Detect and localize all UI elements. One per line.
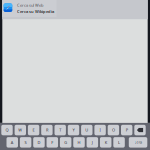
button[interactable]: L [113,137,125,148]
button[interactable]: W [15,125,26,135]
button[interactable]: Delete [134,125,146,135]
button[interactable]: O [108,125,119,135]
button[interactable]: Y [68,125,79,135]
button[interactable]: H [73,137,85,148]
staticText: D [37,140,40,145]
staticText: H [77,140,80,145]
staticText: E [33,127,35,133]
button[interactable]: E [28,125,39,135]
staticText: F [51,140,53,145]
staticText: U [85,127,88,133]
staticText: P [126,127,128,133]
button[interactable]: R [41,125,53,135]
staticText: T [59,127,61,133]
staticText: Q [5,127,8,133]
staticText: Cerca sul Web [17,2,43,8]
staticText: R [46,127,48,133]
staticText: S [25,140,27,145]
button[interactable]: D [33,137,45,148]
staticText: I [100,127,101,133]
staticText: Y [72,127,74,133]
button[interactable]: I [94,125,106,135]
button[interactable]: S [20,137,31,148]
button[interactable]: F [46,137,58,148]
button[interactable]: U [81,125,92,135]
button[interactable]: K [100,137,111,148]
button[interactable]: J [87,137,98,148]
staticText: J [92,140,93,145]
button[interactable]: G [60,137,71,148]
button[interactable]: A [6,137,18,148]
staticText: L [118,140,120,145]
staticText: Cerca [135,141,142,144]
staticText: O [112,127,115,133]
staticText: Cerca su Wikipedia [17,9,54,14]
staticText: G [64,140,67,145]
button[interactable]: Cerca su Wikipedia [2,7,56,16]
button[interactable]: Cerca sul Web [2,1,56,9]
staticText: K [105,140,107,145]
button[interactable]: Cerca [129,137,147,148]
staticText: A [11,140,14,145]
staticText: W [18,127,22,133]
button[interactable]: Q [1,125,13,135]
button[interactable]: T [54,125,66,135]
button[interactable]: P [121,125,132,135]
